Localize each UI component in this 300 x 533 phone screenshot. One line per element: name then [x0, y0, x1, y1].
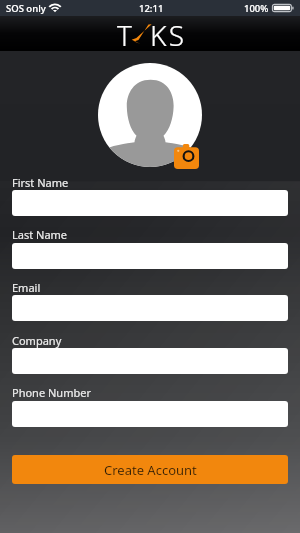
button[interactable]: Last Name: [12, 227, 288, 242]
staticText: KS: [150, 16, 187, 51]
staticText: Phone Number: [12, 385, 91, 400]
button[interactable]: [12, 190, 288, 216]
button[interactable]: [12, 401, 288, 427]
staticText: Email: [12, 280, 41, 295]
button[interactable]: [12, 295, 288, 321]
button[interactable]: Change profile photo: [174, 144, 199, 169]
staticText: T: [117, 16, 132, 51]
staticText: Last Name: [12, 227, 68, 242]
button[interactable]: First Name: [12, 175, 288, 190]
staticText: SOS only: [6, 2, 46, 15]
staticText: First Name: [12, 175, 69, 190]
staticText: 100%: [244, 2, 269, 15]
staticText: 12:11: [139, 2, 164, 15]
staticText: Company: [12, 333, 62, 348]
button[interactable]: [12, 243, 288, 269]
button[interactable]: [12, 348, 288, 374]
button[interactable]: Email: [12, 280, 288, 295]
button[interactable]: Create Account: [12, 455, 288, 484]
button[interactable]: Company: [12, 333, 288, 348]
button[interactable]: Phone Number: [12, 385, 288, 400]
staticText: Create Account: [104, 461, 197, 479]
